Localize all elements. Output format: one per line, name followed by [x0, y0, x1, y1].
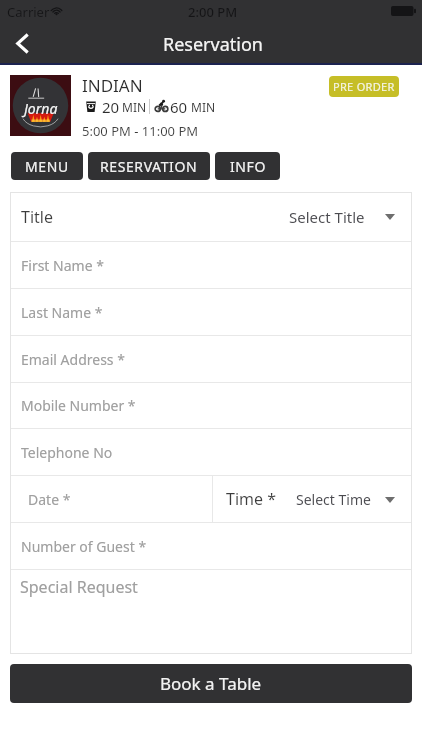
staticText: PRE ORDER — [333, 79, 395, 94]
staticText: Date * — [28, 490, 71, 509]
button[interactable]: Last Name * — [10, 289, 412, 335]
staticText: Time * — [226, 488, 276, 510]
staticText: Select Title — [289, 207, 365, 227]
button[interactable]: INFO — [215, 152, 280, 180]
staticText: First Name * — [21, 256, 104, 275]
staticText: Jorna — [24, 99, 58, 118]
staticText: 2:00 PM — [188, 3, 238, 21]
staticText: MIN — [191, 99, 216, 115]
staticText: 20 — [102, 97, 120, 117]
button[interactable]: Mobile Number * — [10, 383, 412, 428]
staticText: Last Name * — [21, 303, 103, 322]
button[interactable]: First Name * — [10, 242, 412, 288]
button[interactable]: MENU — [11, 152, 83, 180]
button[interactable]: Select Title — [289, 207, 412, 227]
staticText: RESERVATION — [100, 157, 198, 176]
button[interactable]: PRE ORDER — [329, 76, 399, 97]
staticText: 5:00 PM - 11:00 PM — [82, 122, 199, 140]
button[interactable]: Special Request — [10, 570, 412, 654]
button[interactable]: Email Address * — [10, 336, 412, 382]
staticText: MIN — [122, 99, 147, 115]
button[interactable]: Select Time — [296, 490, 412, 509]
staticText: INFO — [230, 157, 266, 176]
staticText: 60 — [170, 97, 188, 117]
staticText: Number of Guest * — [21, 537, 147, 556]
button[interactable]: Book a Table — [10, 664, 412, 703]
staticText: Special Request — [20, 576, 138, 598]
button[interactable]: RESERVATION — [88, 152, 210, 180]
staticText: Title — [21, 206, 53, 228]
staticText: Select Time — [296, 490, 371, 509]
staticText: Email Address * — [21, 350, 125, 369]
button[interactable]: Back — [5, 26, 39, 60]
staticText: Mobile Number * — [21, 396, 136, 415]
button[interactable]: Telephone No — [10, 429, 412, 475]
staticText: MENU — [25, 157, 69, 176]
staticText: Reservation — [163, 32, 263, 57]
button[interactable]: Number of Guest * — [10, 523, 412, 569]
staticText: Book a Table — [160, 672, 262, 695]
staticText: Carrier — [7, 3, 50, 21]
button[interactable]: Date * — [10, 476, 212, 522]
staticText: INDIAN — [82, 74, 143, 97]
staticText: Telephone No — [21, 443, 113, 462]
